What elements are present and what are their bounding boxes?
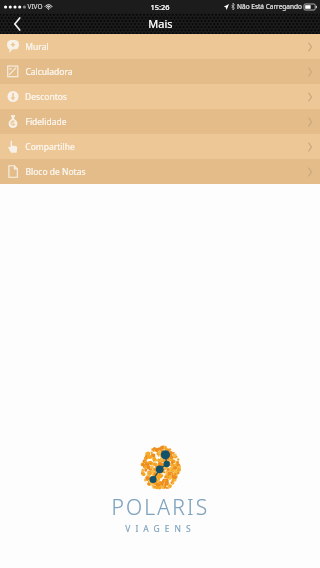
staticText: VIVO <box>27 2 43 11</box>
button[interactable]: Calculadora <box>0 59 320 84</box>
staticText: VIAGENS <box>125 523 196 535</box>
button[interactable]: Back <box>0 13 34 34</box>
button[interactable]: Mural <box>0 34 320 59</box>
staticText: Compartilhe <box>25 141 75 153</box>
staticText: Descontos <box>25 91 67 103</box>
staticText: Calculadora <box>25 66 73 78</box>
button[interactable]: Compartilhe <box>0 134 320 159</box>
button[interactable]: Fidelidade <box>0 109 320 134</box>
staticText: Bloco de Notas <box>25 166 86 178</box>
staticText: Mais <box>148 16 173 31</box>
staticText: Não Está Carregando <box>237 2 302 11</box>
staticText: POLARIS <box>111 493 210 522</box>
button[interactable]: Descontos <box>0 84 320 109</box>
staticText: 15:26 <box>150 2 170 12</box>
staticText: Mural <box>25 41 49 53</box>
staticText: Fidelidade <box>25 116 67 128</box>
button[interactable]: Bloco de Notas <box>0 159 320 184</box>
